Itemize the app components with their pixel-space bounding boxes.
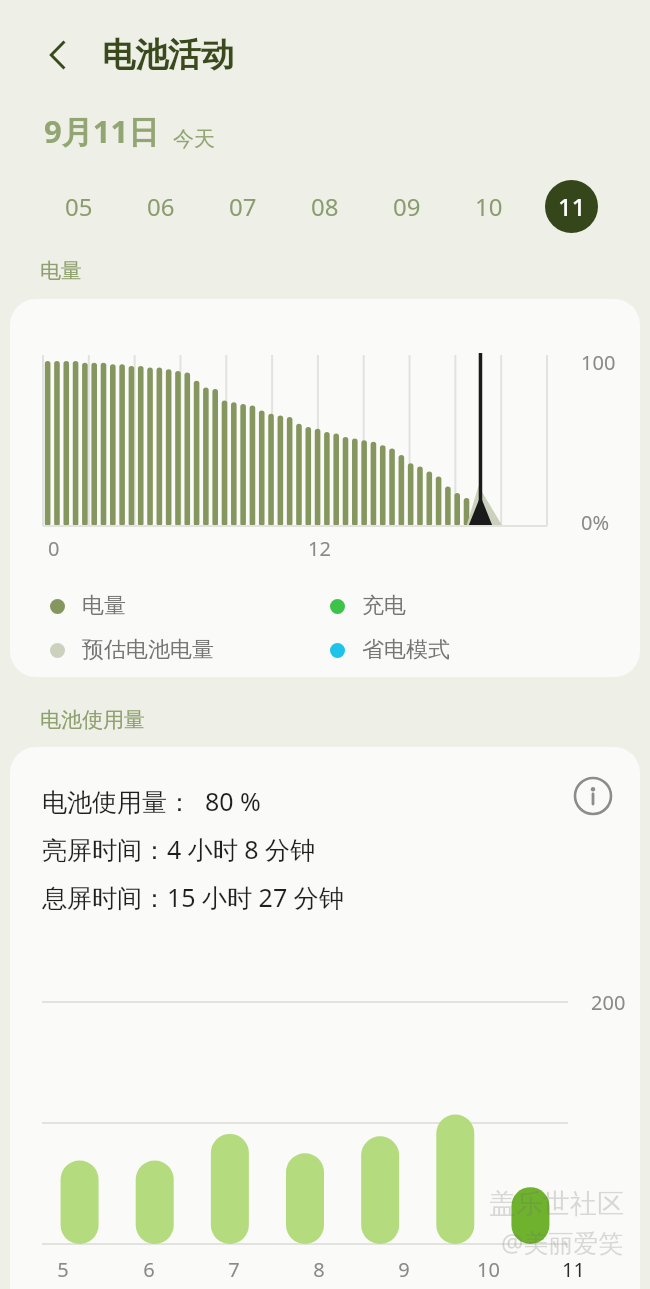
button[interactable]: Information <box>566 769 620 823</box>
staticText: 0% <box>581 509 610 536</box>
staticText: 09 <box>393 190 421 223</box>
staticText: 06 <box>147 190 175 223</box>
staticText: 充电 <box>362 592 406 620</box>
staticText: 电池活动 <box>102 34 234 76</box>
staticText: 200 <box>591 989 626 1016</box>
button[interactable]: 省电模式 <box>330 636 610 664</box>
staticText: 预估电池电量 <box>82 636 214 664</box>
staticText: 息屏时间：15 小时 27 分钟 <box>42 880 344 914</box>
staticText: 电量 <box>40 258 82 284</box>
staticText: 9月11日 <box>44 110 160 152</box>
staticText: 12 <box>308 535 331 562</box>
button[interactable]: Back <box>30 27 86 83</box>
staticText: 省电模式 <box>362 636 450 664</box>
button[interactable]: 09 <box>366 178 448 234</box>
staticText: 100 <box>581 349 616 376</box>
staticText: 9 <box>398 1256 410 1283</box>
button[interactable]: 11 <box>530 178 612 234</box>
button[interactable]: 07 <box>202 178 284 234</box>
staticText: 10 <box>477 1256 500 1283</box>
staticText: @美丽爱笑 <box>501 1225 624 1259</box>
staticText: 5 <box>57 1256 69 1283</box>
staticText: 7 <box>228 1256 240 1283</box>
staticText: 盖乐世社区 <box>489 1187 624 1221</box>
staticText: 电量 <box>82 592 126 620</box>
button[interactable]: 100 <box>10 299 640 677</box>
button[interactable]: 05 <box>38 178 120 234</box>
staticText: 电池使用量 <box>40 707 145 733</box>
staticText: 11 <box>558 190 586 223</box>
button[interactable]: 10 <box>448 178 530 234</box>
button[interactable]: 充电 <box>330 592 610 620</box>
button[interactable]: 预估电池电量 <box>50 636 330 664</box>
staticText: 亮屏时间：4 小时 8 分钟 <box>42 832 316 866</box>
staticText: 05 <box>65 190 93 223</box>
button[interactable]: 06 <box>120 178 202 234</box>
staticText: 07 <box>229 190 257 223</box>
staticText: 10 <box>475 190 503 223</box>
staticText: 电池使用量： 80 % <box>42 784 261 818</box>
button[interactable]: 电量 <box>50 592 330 620</box>
staticText: 08 <box>311 190 339 223</box>
staticText: 6 <box>143 1256 155 1283</box>
button[interactable]: 08 <box>284 178 366 234</box>
staticText: 0 <box>48 535 60 562</box>
staticText: 11 <box>562 1256 585 1283</box>
staticText: 今天 <box>173 126 215 152</box>
staticText: 8 <box>313 1256 325 1283</box>
